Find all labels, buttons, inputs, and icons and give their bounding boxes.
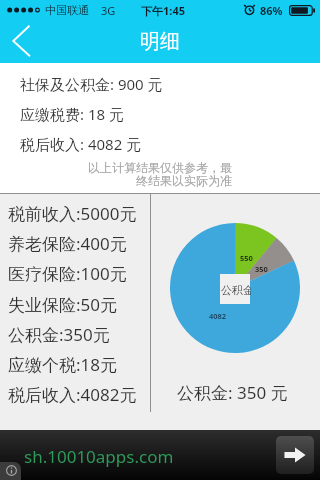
- staticText: 86%: [260, 3, 283, 18]
- button[interactable]: Page info: [0, 462, 21, 480]
- staticText: 失业保险:50元: [8, 293, 118, 316]
- button[interactable]: Back: [0, 20, 44, 63]
- staticText: 公积金: 350 元: [177, 381, 288, 404]
- staticText: 税后收入: 4082 元: [20, 134, 142, 154]
- staticText: 下午1:45: [141, 3, 185, 18]
- staticText: 以上计算结果仅供参考，最 终结果以实际为准: [0, 160, 232, 189]
- staticText: 350: [255, 264, 268, 274]
- staticText: 应缴税费: 18 元: [20, 104, 124, 124]
- staticText: 4082: [209, 311, 227, 321]
- staticText: 养老保险:400元: [8, 232, 127, 255]
- staticText: 公积金:350元: [8, 323, 110, 346]
- staticText: 3G: [101, 3, 116, 18]
- button[interactable]: Go forward: [276, 436, 314, 474]
- staticText: 应缴个税:18元: [8, 353, 118, 376]
- staticText: 社保及公积金: 900 元: [20, 74, 163, 94]
- staticText: 中国联通: [45, 3, 89, 17]
- staticText: 税前收入:5000元: [8, 202, 137, 225]
- staticText: 公积金: [221, 283, 251, 297]
- staticText: 550: [240, 253, 253, 263]
- staticText: sh.10010apps.com: [24, 445, 174, 468]
- staticText: 医疗保险:100元: [8, 262, 127, 285]
- staticText: 明细: [140, 29, 180, 54]
- staticText: 税后收入:4082元: [8, 383, 137, 406]
